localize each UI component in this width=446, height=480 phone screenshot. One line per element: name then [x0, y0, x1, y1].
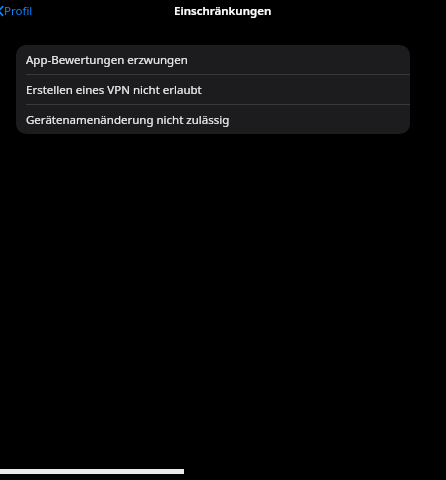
staticText: Gerätenamenänderung nicht zulässig	[26, 112, 230, 128]
staticText: Profil	[4, 3, 33, 19]
staticText: Einschränkungen	[174, 3, 272, 19]
button[interactable]: Gerätenamenänderung nicht zulässig	[16, 105, 410, 134]
button[interactable]: Zurück	[0, 1, 35, 21]
staticText: Erstellen eines VPN nicht erlaubt	[26, 82, 202, 98]
button[interactable]: App-Bewertungen erzwungen	[16, 45, 410, 75]
staticText: App-Bewertungen erzwungen	[26, 52, 188, 68]
other: Zurück	[0, 6, 3, 16]
button[interactable]: Erstellen eines VPN nicht erlaubt	[16, 75, 410, 105]
